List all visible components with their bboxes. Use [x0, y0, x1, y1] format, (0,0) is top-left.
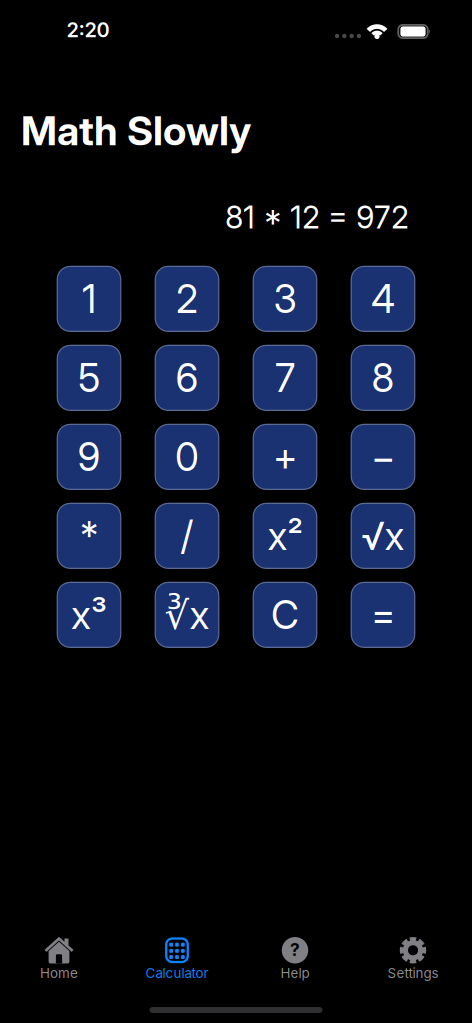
staticText: 5 [78, 355, 100, 401]
button[interactable]: 3 [253, 266, 317, 331]
button[interactable]: 7 [253, 345, 317, 410]
staticText: = [371, 592, 395, 638]
staticText: 3 [273, 276, 296, 322]
staticText: ∛x [164, 592, 209, 638]
button[interactable]: Calculator [118, 935, 236, 983]
staticText: 1 [82, 276, 96, 322]
button[interactable]: / [155, 503, 219, 568]
staticText: + [273, 434, 297, 480]
button[interactable]: ∛x [155, 582, 219, 647]
button[interactable]: ? [236, 935, 354, 983]
button[interactable]: C [253, 582, 317, 647]
staticText: ? [290, 939, 300, 960]
staticText: / [180, 513, 193, 559]
button[interactable]: − [351, 424, 415, 489]
button[interactable]: x² [253, 503, 317, 568]
staticText: 0 [175, 434, 199, 480]
button[interactable]: 8 [351, 345, 415, 410]
button[interactable]: √x [351, 503, 415, 568]
staticText: Help [280, 965, 309, 981]
staticText: C [271, 592, 299, 638]
staticText: 4 [371, 276, 395, 322]
staticText: 81 * 12 = 972 [225, 199, 409, 235]
staticText: x³ [71, 592, 107, 638]
button[interactable]: 5 [57, 345, 121, 410]
staticText: * [80, 513, 98, 559]
staticText: √x [361, 513, 404, 559]
button[interactable]: Home [0, 935, 118, 983]
button[interactable]: 6 [155, 345, 219, 410]
staticText: Calculator [145, 965, 208, 981]
staticText: 2 [176, 276, 198, 322]
staticText: Math Slowly [21, 107, 251, 154]
staticText: 2:20 [66, 18, 109, 42]
staticText: 7 [275, 355, 295, 401]
staticText: − [371, 434, 395, 480]
staticText: x² [267, 513, 302, 559]
button[interactable]: 9 [57, 424, 121, 489]
button[interactable]: 0 [155, 424, 219, 489]
staticText: Settings [387, 965, 438, 981]
staticText: 8 [371, 355, 394, 401]
button[interactable]: * [57, 503, 121, 568]
staticText: 9 [77, 434, 100, 480]
button[interactable]: Settings [354, 935, 472, 983]
staticText: 6 [175, 355, 198, 401]
staticText: Home [40, 965, 78, 981]
button[interactable]: x³ [57, 582, 121, 647]
button[interactable]: 2 [155, 266, 219, 331]
button[interactable]: = [351, 582, 415, 647]
button[interactable]: + [253, 424, 317, 489]
button[interactable]: 1 [57, 266, 121, 331]
button[interactable]: 4 [351, 266, 415, 331]
